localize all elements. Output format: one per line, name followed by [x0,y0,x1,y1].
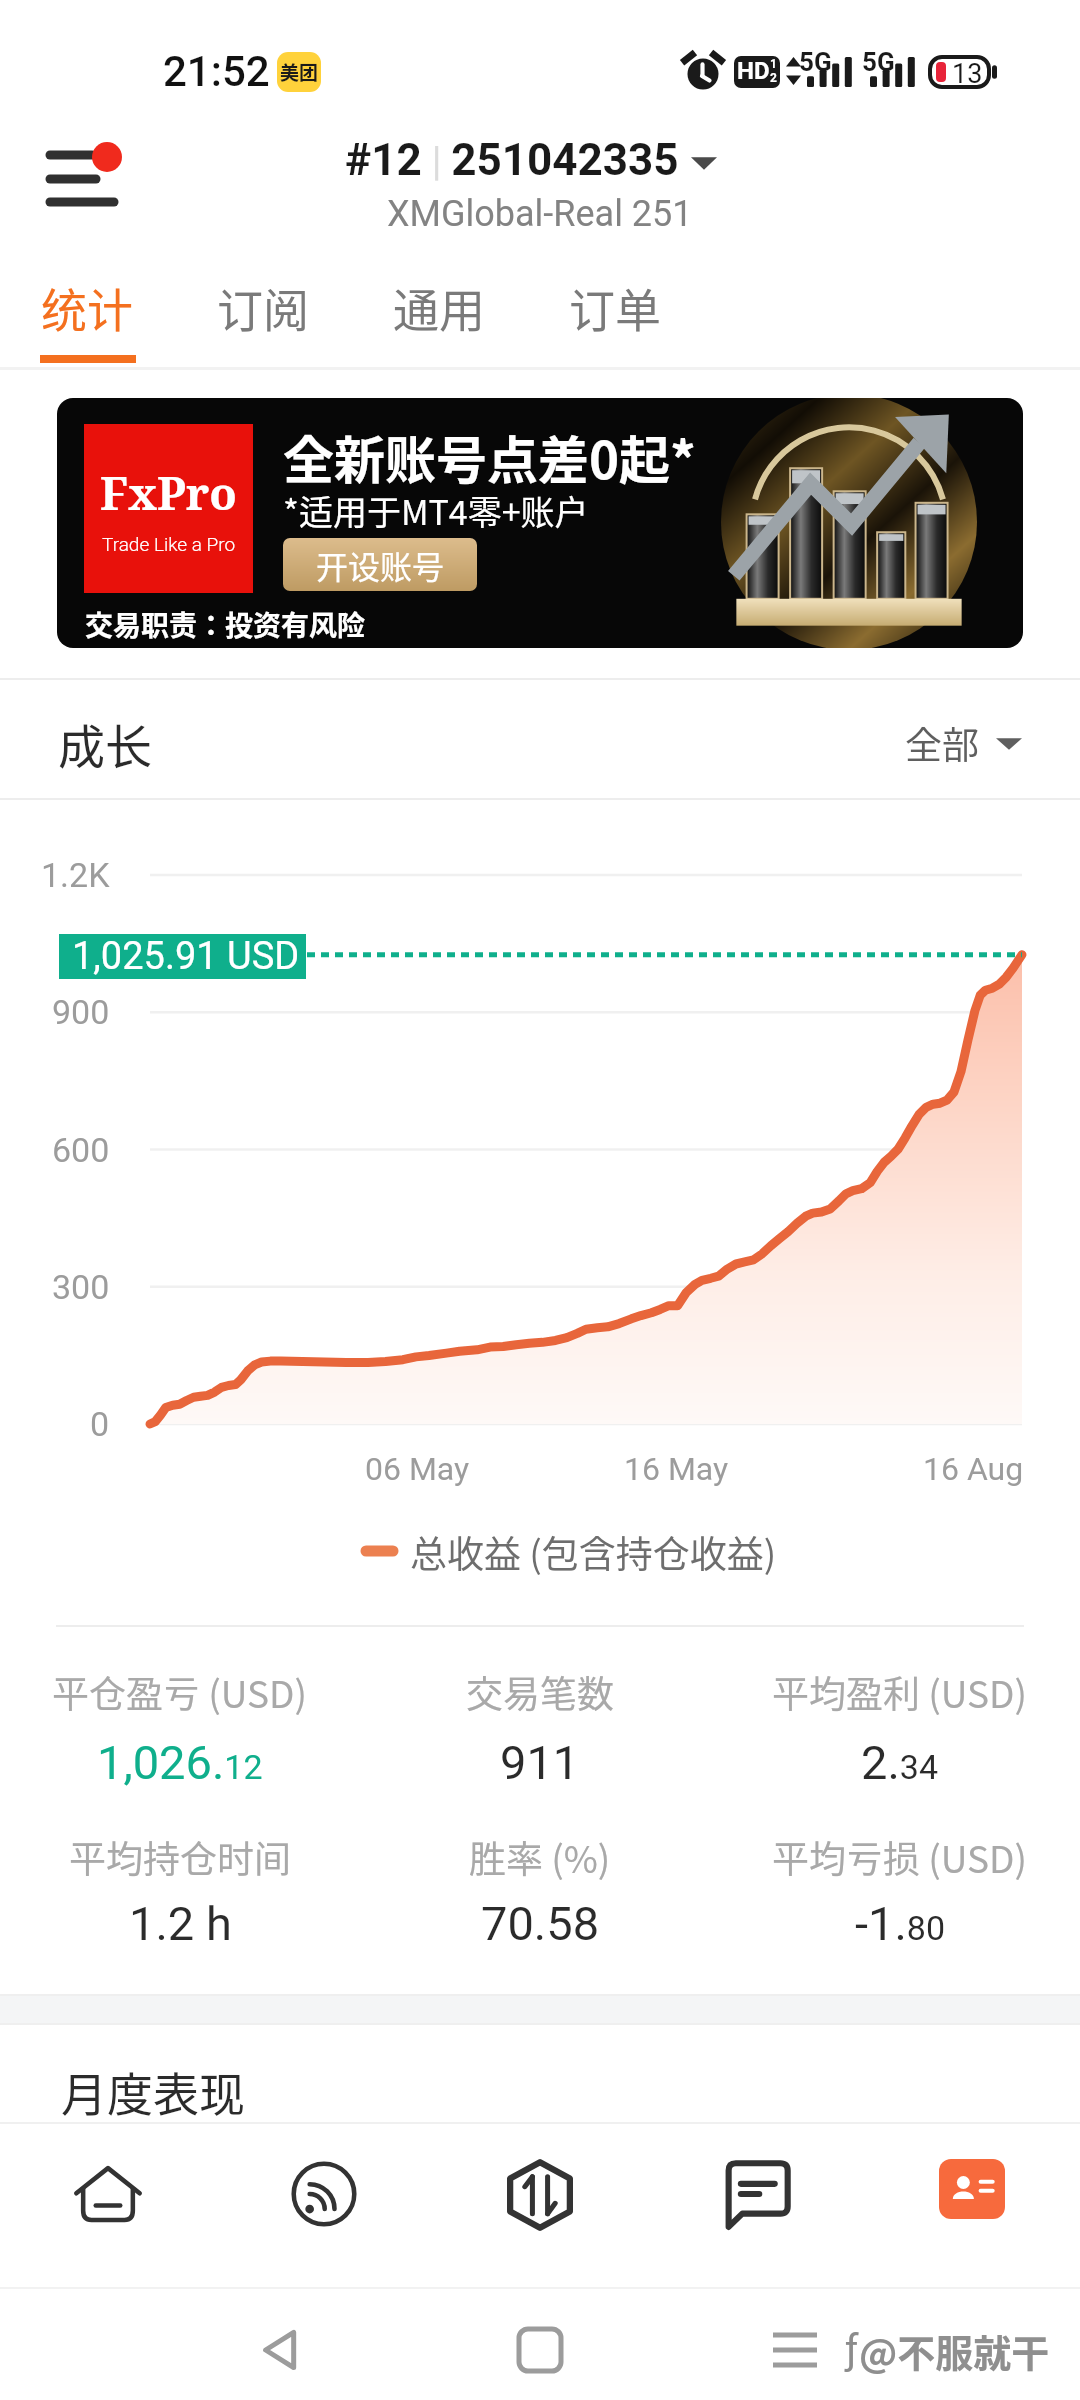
button[interactable]: 开设账号 [283,538,477,591]
staticText: 成长 [58,709,152,777]
button[interactable]: #12 | 251042335 [345,130,717,190]
staticText: 21:52 [163,47,270,96]
button[interactable]: 订阅 [175,265,351,367]
staticText: 1 [770,57,777,71]
staticText: #12 | 251042335 [345,134,679,186]
staticText: 订单 [569,274,661,341]
staticText: 600 [52,1130,110,1170]
staticText: FxPro [100,462,237,523]
staticText: 13 [952,58,983,90]
button[interactable]: Back [235,2305,325,2395]
staticText: 平仓盈亏 (USD) [52,1665,308,1719]
staticText: XMGlobal-Real 251 [387,193,693,235]
button[interactable]: 订单 [527,265,703,367]
staticText: 月度表现 [61,2058,245,2125]
button[interactable]: FxPro [57,398,1023,648]
button[interactable]: 全部 [905,698,1022,788]
staticText: 1.2 h [129,1896,232,1951]
staticText: 平均盈利 (USD) [772,1665,1028,1719]
staticText: 通用 [393,274,485,341]
staticText: *适用于MT4零+账户 [283,486,589,535]
staticText: 1,026.12 [97,1735,263,1790]
staticText: 0 [90,1404,110,1444]
button[interactable]: Chat [648,2124,864,2287]
button[interactable]: Recents [750,2305,840,2395]
staticText: HD [737,57,770,85]
staticText: 统计 [41,274,133,341]
staticText: 16 Aug [923,1450,1024,1488]
button[interactable]: Menu [20,120,140,265]
staticText: 总收益 (包含持仓收益) [410,1525,777,1579]
staticText: 300 [52,1267,110,1307]
button[interactable]: Home [0,2124,216,2287]
staticText: -1.80 [855,1896,946,1951]
staticText: 2 [770,71,777,85]
staticText: 2.34 [861,1735,939,1790]
staticText: 平均亏损 (USD) [772,1830,1028,1884]
staticText: 1.2K [41,855,110,895]
staticText: 交易职责：投资有风险 [85,604,366,645]
button[interactable]: Home [495,2305,585,2395]
button[interactable]: 统计 [0,265,175,367]
staticText: 5G [799,47,832,77]
staticText: 开设账号 [316,542,445,588]
staticText: 全新账号点差0起* [283,420,696,494]
button[interactable]: Signals [216,2124,432,2287]
staticText: 订阅 [217,274,309,341]
staticText: 16 May [624,1450,729,1488]
staticText: ƒ⁠ [845,2327,859,2374]
staticText: 06 May [365,1450,470,1488]
staticText: 1,025.91 USD [72,934,300,979]
staticText: 70.58 [481,1896,600,1951]
button[interactable]: Trade [432,2124,648,2287]
staticText: 胜率 (%) [469,1830,611,1884]
staticText: 5G [862,47,895,77]
button[interactable]: Account [864,2124,1080,2287]
button[interactable]: 通用 [351,265,527,367]
staticText: @不服就干 [859,2323,1050,2378]
staticText: 美团 [280,58,319,86]
staticText: 全部 [905,716,979,770]
staticText: 交易笔数 [466,1665,614,1719]
staticText: 911 [500,1735,580,1790]
staticText: 平均持仓时间 [69,1830,291,1884]
staticText: Trade Like a Pro [102,533,236,555]
staticText: 900 [52,992,110,1032]
